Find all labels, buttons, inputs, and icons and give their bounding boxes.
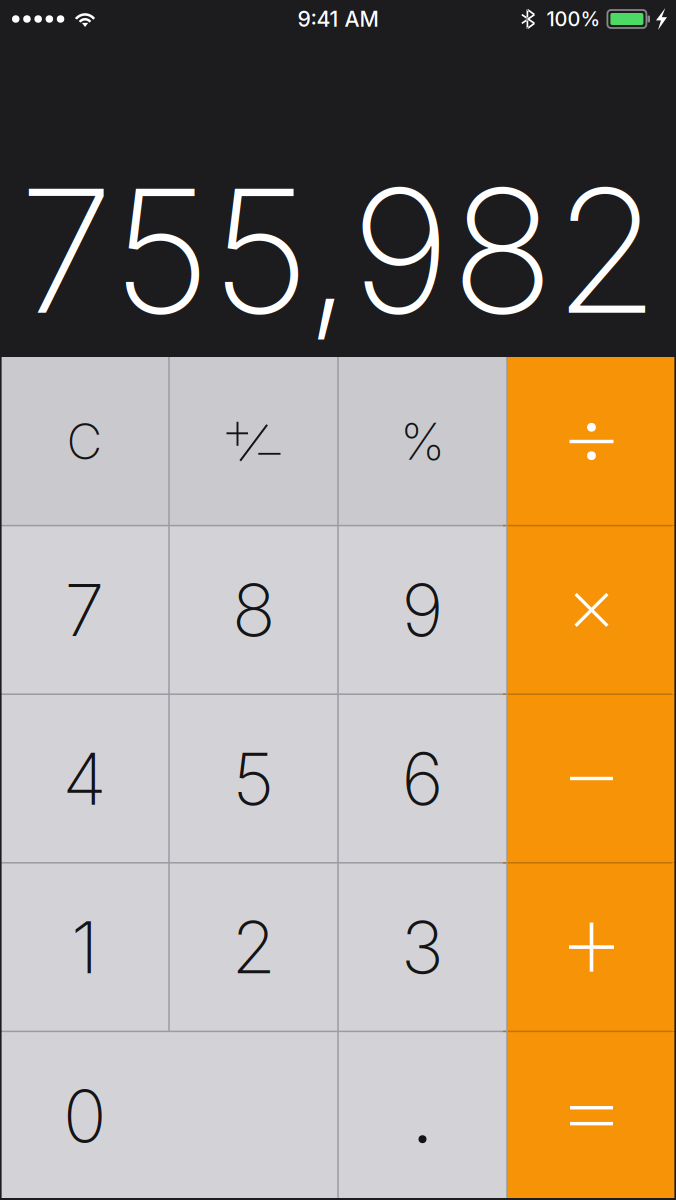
staticText: 9 — [401, 566, 443, 653]
staticText: 7 — [64, 566, 104, 653]
staticText: 5 — [232, 735, 274, 822]
staticText: 8 — [232, 566, 275, 653]
button[interactable]: Divide — [507, 357, 676, 526]
staticText: 9:41 AM — [297, 6, 378, 32]
button[interactable]: 0 — [0, 1031, 338, 1200]
staticText: 755,982 — [19, 147, 659, 354]
staticText: 6 — [401, 735, 443, 822]
button[interactable]: Add — [507, 863, 676, 1031]
button[interactable]: Clear — [0, 357, 169, 526]
staticText: 3 — [401, 903, 444, 991]
button[interactable]: Subtract — [507, 694, 676, 863]
button[interactable]: Decimal point — [338, 1031, 507, 1200]
button[interactable]: 8 — [169, 526, 338, 694]
button[interactable]: Equals — [507, 1031, 676, 1200]
staticText: % — [400, 411, 445, 472]
staticText: 100% — [546, 7, 600, 31]
staticText: C — [66, 411, 102, 471]
button[interactable]: 5 — [169, 694, 338, 863]
button[interactable]: Multiply — [507, 526, 676, 694]
button[interactable]: Plus minus — [169, 357, 338, 526]
button[interactable]: 4 — [0, 694, 169, 863]
staticText: 0 — [63, 1072, 106, 1159]
staticText: 1 — [71, 903, 98, 991]
button[interactable]: 9 — [338, 526, 507, 694]
button[interactable]: 1 — [0, 863, 169, 1031]
button[interactable]: 2 — [169, 863, 338, 1031]
staticText: 2 — [231, 903, 275, 991]
staticText: 4 — [62, 735, 106, 822]
button[interactable]: Percent — [338, 357, 507, 526]
button[interactable]: 3 — [338, 863, 507, 1031]
button[interactable]: 7 — [0, 526, 169, 694]
button[interactable]: 6 — [338, 694, 507, 863]
